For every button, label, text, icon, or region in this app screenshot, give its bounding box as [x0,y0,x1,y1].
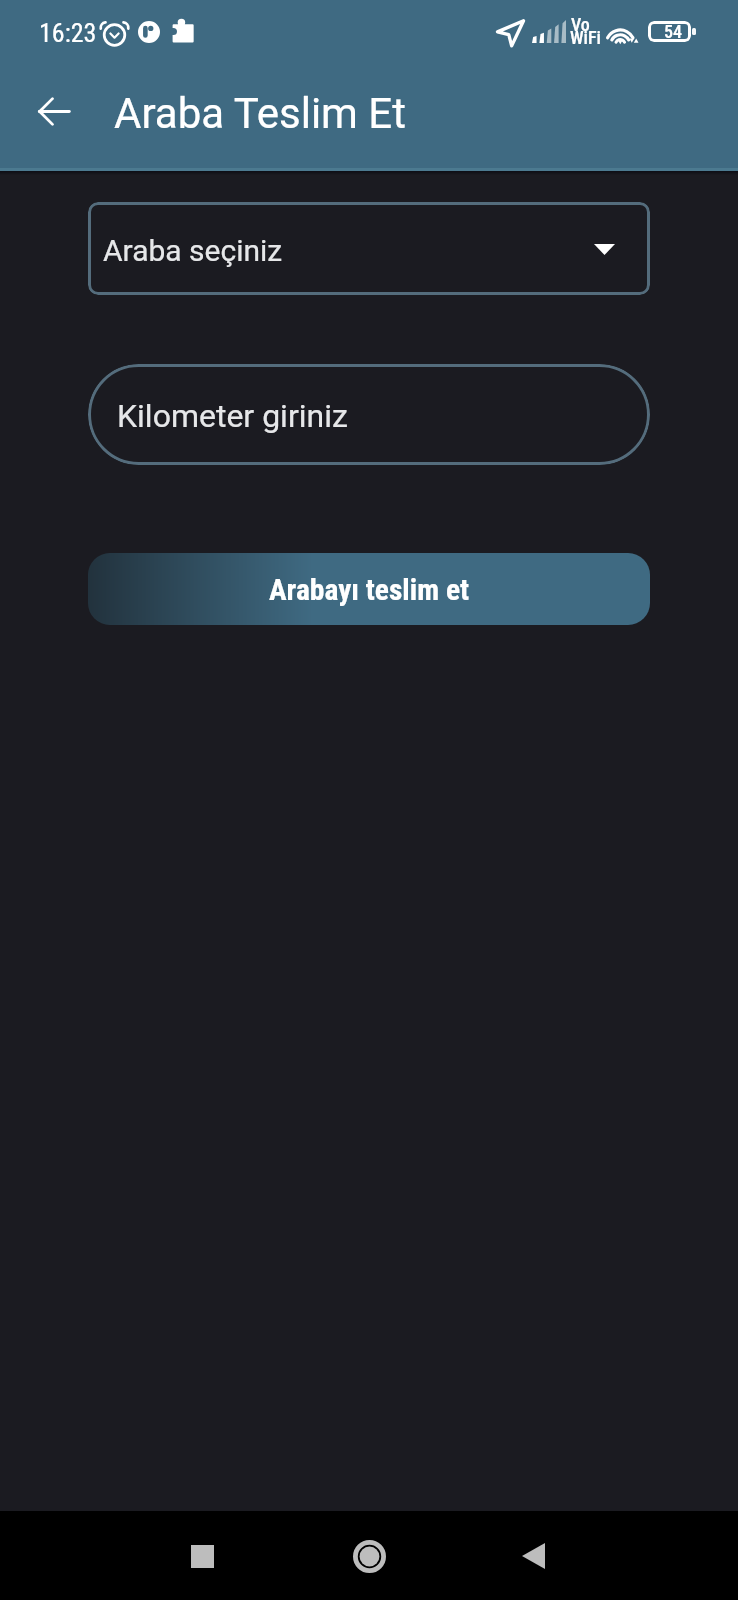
staticText: 16:23 [39,18,97,48]
button[interactable]: Arabayı teslim et [88,553,650,625]
staticText: Vo [571,14,590,35]
button[interactable]: Araba seçiniz [88,202,650,295]
staticText: WiFi [570,27,601,48]
button[interactable]: Kilometer giriniz [88,364,650,465]
staticText: Araba Teslim Et [114,89,406,138]
button[interactable]: Back [493,1516,573,1596]
button[interactable]: Home [329,1516,409,1596]
staticText: Araba seçiniz [103,233,283,268]
button[interactable]: Back [23,81,83,141]
button[interactable]: Recent apps [162,1516,242,1596]
staticText: 54 [664,21,682,42]
staticText: Arabayı teslim et [269,573,470,608]
staticText: Kilometer giriniz [117,397,348,435]
